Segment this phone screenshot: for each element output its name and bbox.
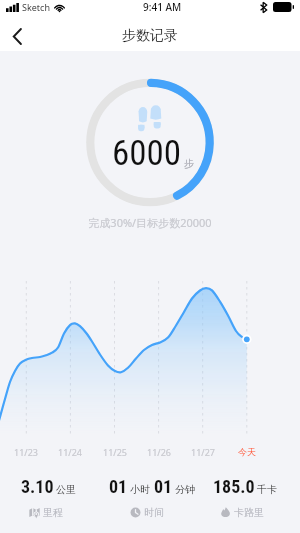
staticText: 步 xyxy=(184,157,194,170)
staticText: 千卡 xyxy=(257,483,277,496)
staticText: 01 xyxy=(154,476,173,497)
staticText: 11/23 xyxy=(4,446,48,458)
staticText: 今天 xyxy=(225,446,269,457)
staticText: 完成30%/目标步数20000 xyxy=(0,215,300,230)
staticText: 9:41 AM xyxy=(143,0,182,14)
staticText: 公里 xyxy=(56,483,76,496)
staticText: 11/25 xyxy=(93,446,137,458)
staticText: 185.0 xyxy=(213,476,255,497)
staticText: 步数记录 xyxy=(122,27,178,45)
staticText: 卡路里 xyxy=(234,506,264,519)
button[interactable]: 01 xyxy=(97,476,206,519)
staticText: 3.10 xyxy=(21,476,54,497)
staticText: 时间 xyxy=(144,506,164,519)
staticText: 11/24 xyxy=(48,446,92,458)
button[interactable]: Back xyxy=(0,22,34,51)
staticText: 11/27 xyxy=(181,446,225,458)
staticText: 分钟 xyxy=(175,483,195,496)
staticText: 6000 xyxy=(112,133,182,174)
staticText: 11/26 xyxy=(137,446,181,458)
staticText: 小时 xyxy=(130,483,150,496)
button[interactable]: 185.0 xyxy=(206,476,283,519)
staticText: 01 xyxy=(109,476,128,497)
button[interactable]: 3.10 xyxy=(0,476,97,519)
staticText: Sketch xyxy=(22,1,50,13)
staticText: 里程 xyxy=(43,506,63,519)
